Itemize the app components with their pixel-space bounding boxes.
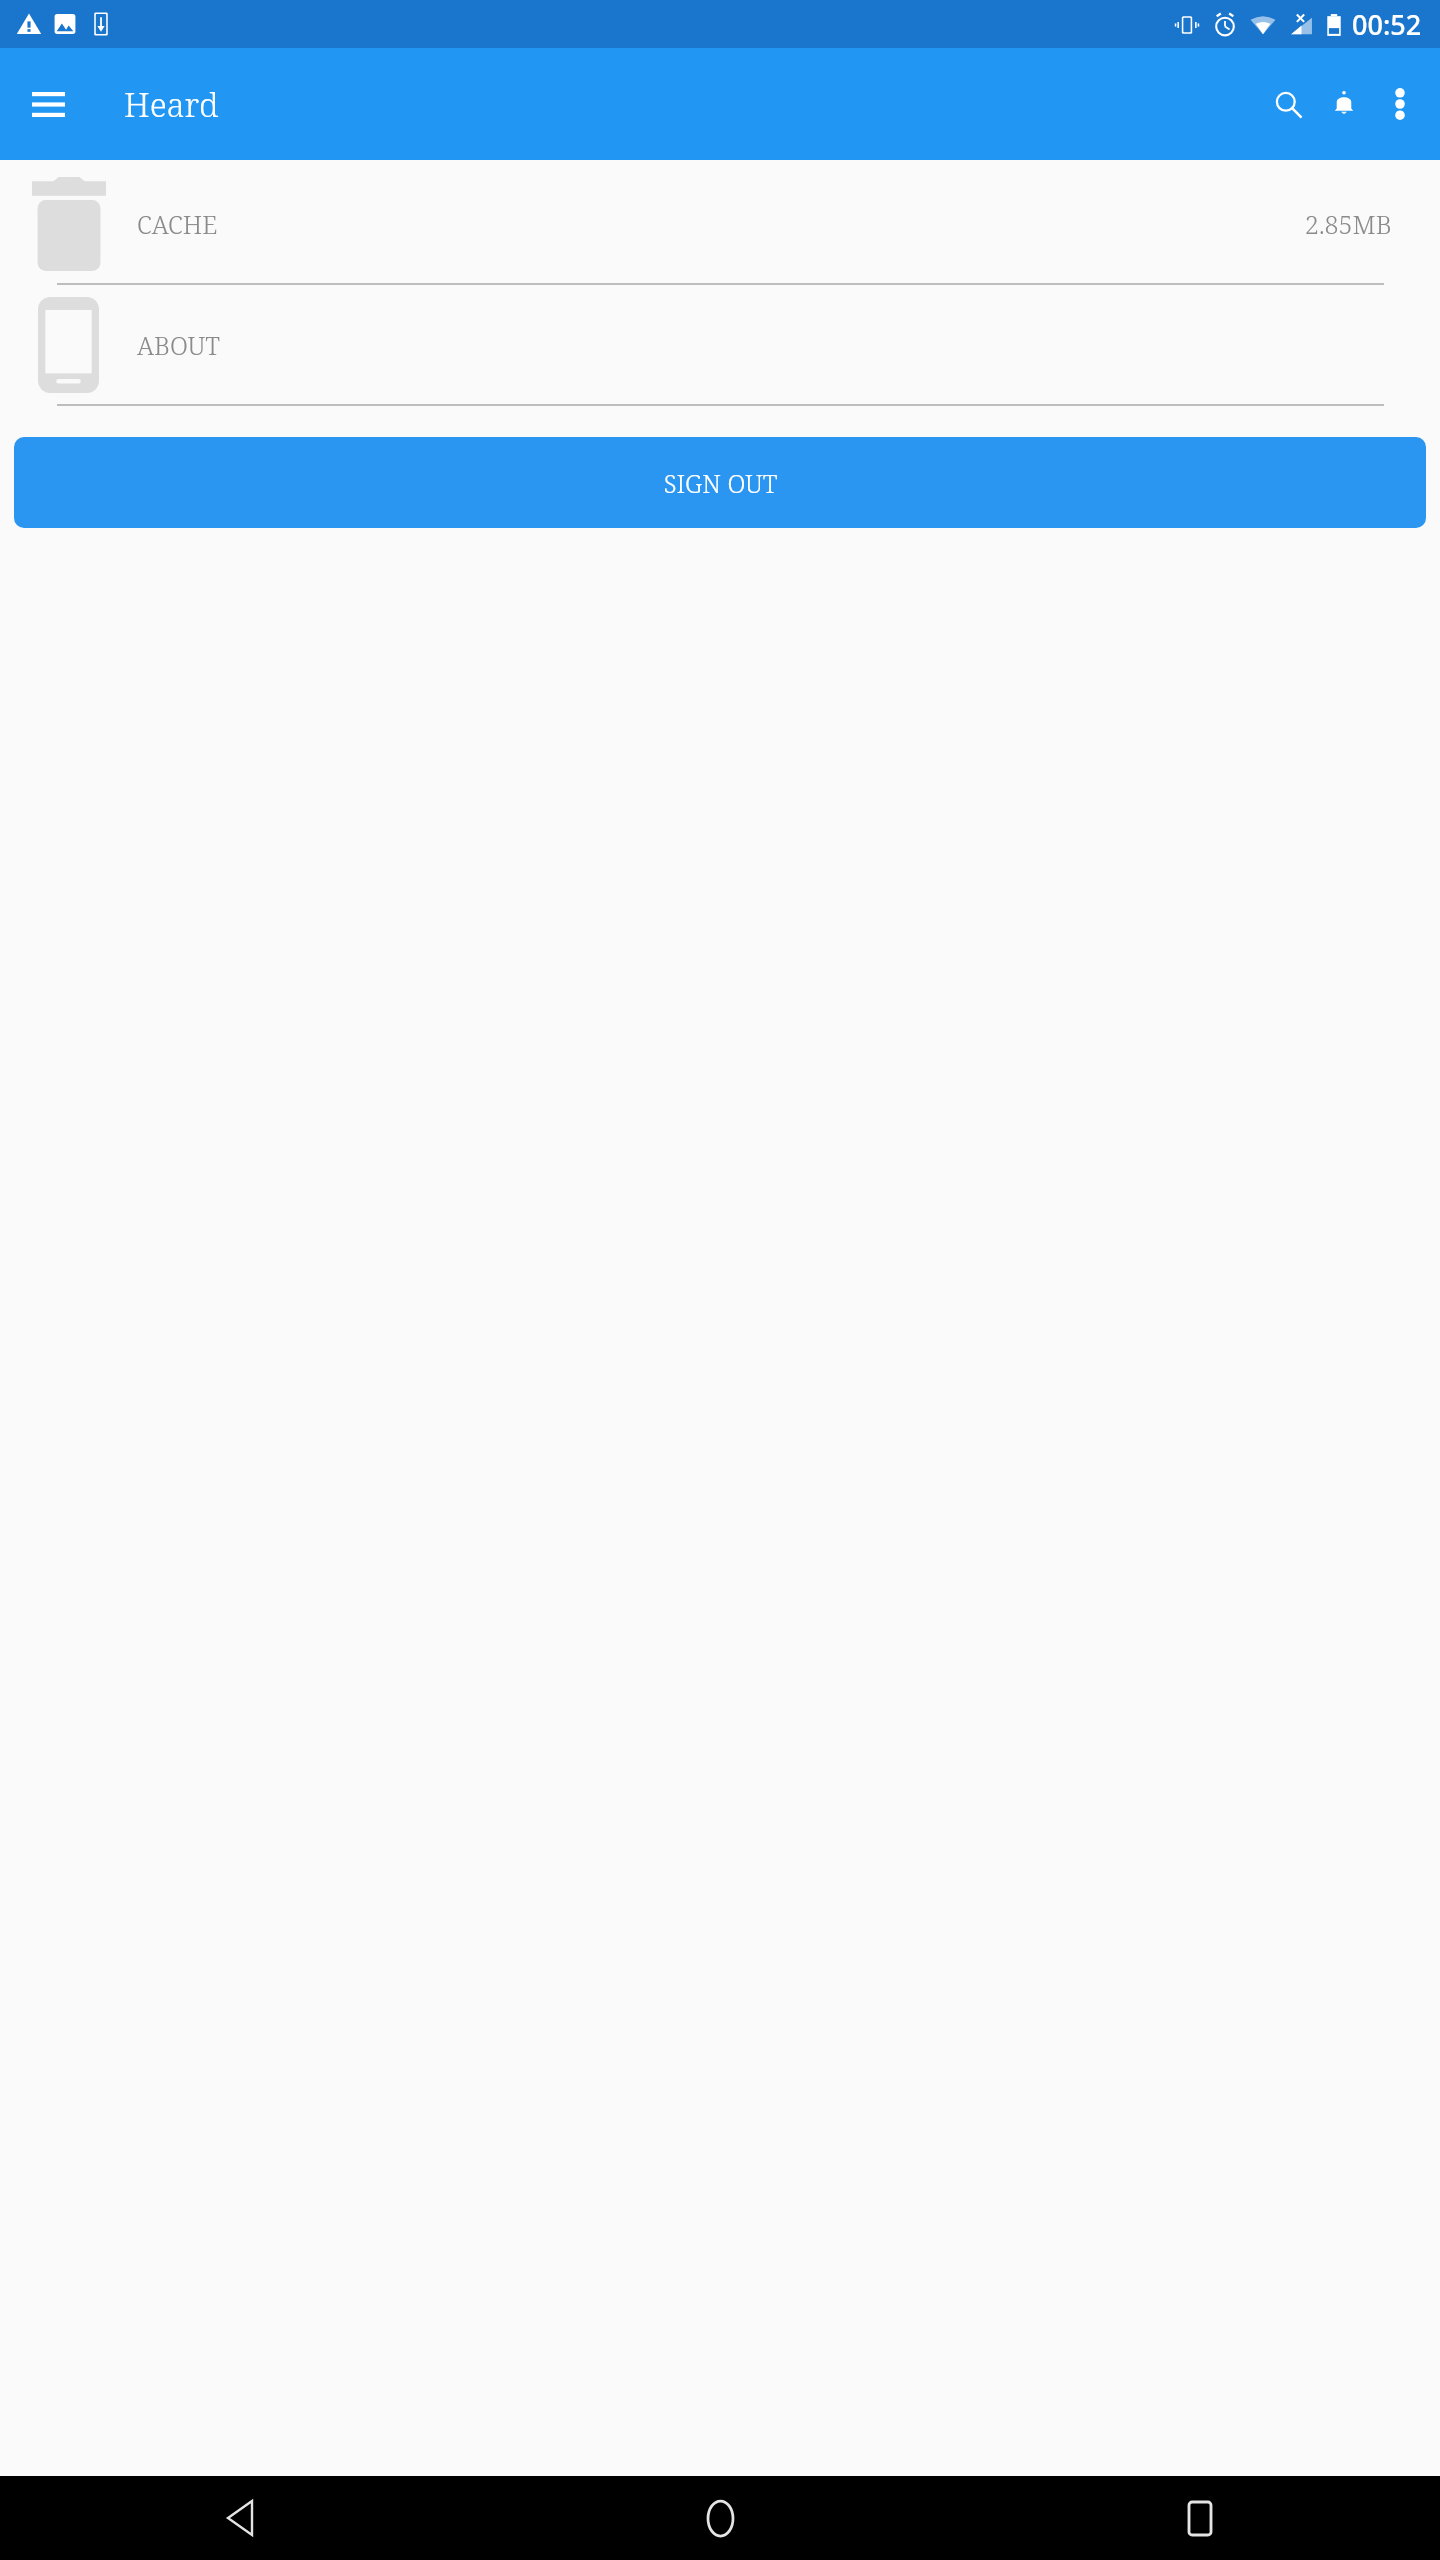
button[interactable]: SIGN OUT (14, 437, 1426, 528)
button[interactable]: Open navigation menu (20, 76, 76, 132)
staticText: CACHE (137, 207, 218, 241)
button[interactable]: Recent apps (960, 2476, 1440, 2560)
button[interactable]: CACHE (0, 164, 1440, 283)
staticText: 2.85MB (1305, 207, 1392, 241)
staticText: SIGN OUT (663, 466, 778, 500)
button[interactable]: Search (1260, 76, 1316, 132)
button[interactable]: Home (480, 2476, 960, 2560)
staticText: ABOUT (137, 328, 221, 362)
button[interactable]: More options (1372, 76, 1428, 132)
button[interactable]: ABOUT (0, 285, 1440, 404)
button[interactable]: Back (0, 2476, 480, 2560)
button[interactable]: Notifications (1316, 76, 1372, 132)
staticText: 00:52 (1352, 6, 1422, 43)
staticText: Heard (124, 82, 219, 127)
